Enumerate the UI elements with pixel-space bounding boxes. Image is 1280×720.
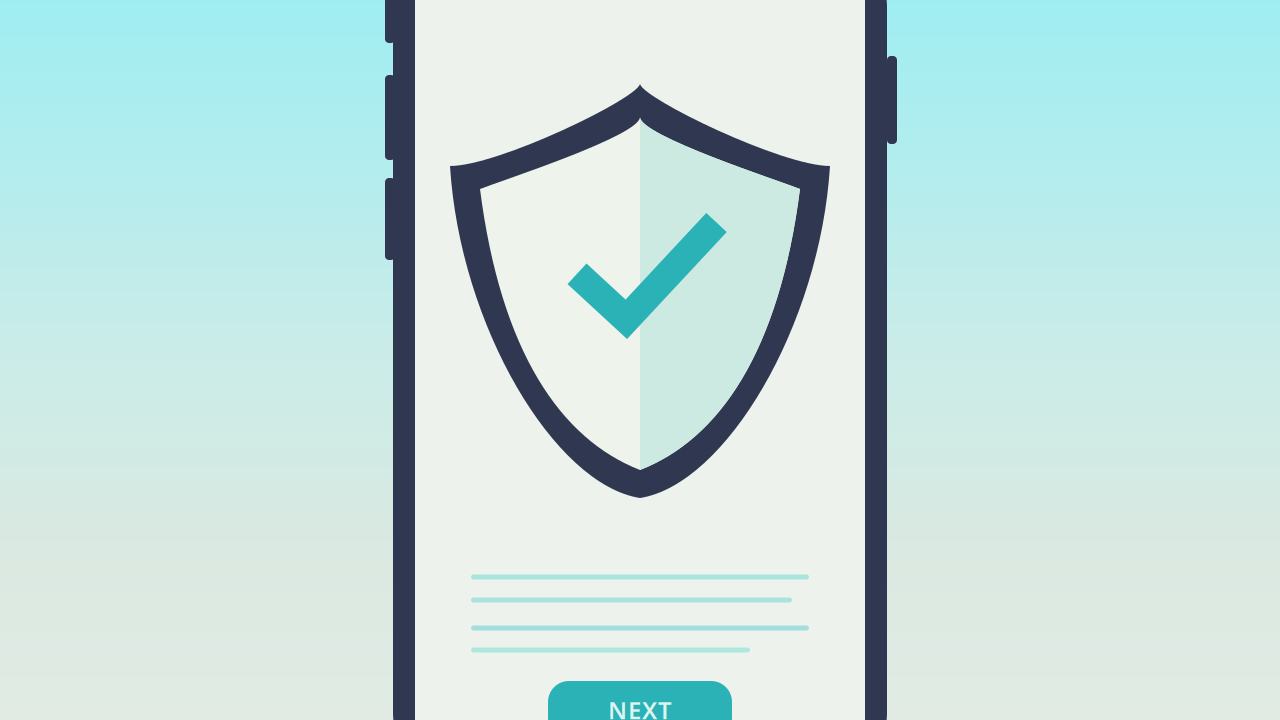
staticText: NEXT <box>608 694 672 720</box>
button[interactable]: NEXT <box>548 681 732 720</box>
